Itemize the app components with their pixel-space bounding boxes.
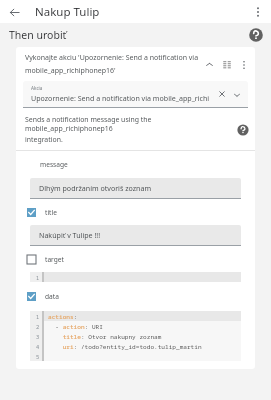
button[interactable]: Help xyxy=(234,121,251,138)
button[interactable]: Reorder xyxy=(218,56,235,73)
staticText: Akcia xyxy=(31,85,43,91)
button[interactable]: Dlhým podržaním otvoriš zoznam xyxy=(30,178,241,199)
staticText: Vykonajte akciu 'Upozornenie: Send a not… xyxy=(25,53,199,63)
button[interactable]: data xyxy=(16,291,255,302)
staticText: Dlhým podržaním otvoriš zoznam xyxy=(39,183,152,193)
staticText: title xyxy=(45,208,57,217)
staticText: Nakúpiť v Tulipe !!! xyxy=(39,230,101,240)
button[interactable]: Clear xyxy=(216,88,228,100)
staticText: uri: /todo?entity_id=todo.tulip_martin xyxy=(48,342,202,350)
button[interactable]: 1 xyxy=(30,311,241,361)
button[interactable]: title xyxy=(16,207,255,218)
button[interactable]: Help xyxy=(247,26,265,44)
staticText: 3 xyxy=(36,333,40,340)
staticText: 2 xyxy=(36,323,40,330)
staticText: message xyxy=(40,160,68,169)
button[interactable]: Nakúpiť v Tulipe !!! xyxy=(30,225,241,246)
staticText: Upozornenie: Send a notification via mob… xyxy=(31,93,210,103)
staticText: target xyxy=(45,255,64,264)
staticText: Nakup Tulip xyxy=(35,4,100,20)
button[interactable]: Open dropdown xyxy=(231,89,242,100)
button[interactable]: Back xyxy=(3,1,25,23)
staticText: data xyxy=(45,292,59,301)
button[interactable]: 1 xyxy=(30,272,241,282)
staticText: Then urobiť xyxy=(9,28,67,42)
button[interactable]: More options xyxy=(247,1,269,23)
button[interactable]: More xyxy=(235,56,252,73)
staticText: 4 xyxy=(36,343,40,350)
staticText: actions: xyxy=(48,312,78,320)
staticText: integration. xyxy=(25,135,63,144)
button[interactable]: Vykonajte akciu 'Upozornenie: Send a not… xyxy=(16,47,255,81)
staticText: 1 xyxy=(36,274,40,281)
staticText: Sends a notification message using the m… xyxy=(25,115,234,133)
button[interactable]: Akcia xyxy=(23,81,248,108)
button[interactable]: Collapse xyxy=(201,56,218,73)
button[interactable]: target xyxy=(16,254,255,265)
staticText: 5 xyxy=(36,353,40,360)
staticText: 1 xyxy=(36,313,40,320)
staticText: - action: URI xyxy=(48,322,103,330)
staticText: mobile_app_richiphonep16' xyxy=(25,66,116,76)
staticText: title: Otvor nakupny zoznam xyxy=(48,332,162,340)
